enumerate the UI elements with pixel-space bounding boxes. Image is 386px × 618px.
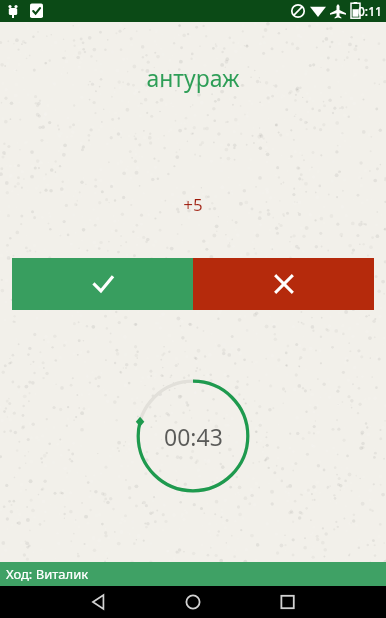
button[interactable]: Correct bbox=[12, 258, 193, 310]
button[interactable]: Skip bbox=[193, 258, 374, 310]
button[interactable]: Ход: Виталик bbox=[0, 562, 386, 586]
staticText: 00:43 bbox=[164, 421, 223, 452]
staticText: Ход: Виталик bbox=[6, 565, 89, 583]
staticText: +5 bbox=[0, 193, 386, 216]
staticText: антураж bbox=[0, 62, 386, 93]
staticText: 0:11 bbox=[358, 3, 382, 19]
